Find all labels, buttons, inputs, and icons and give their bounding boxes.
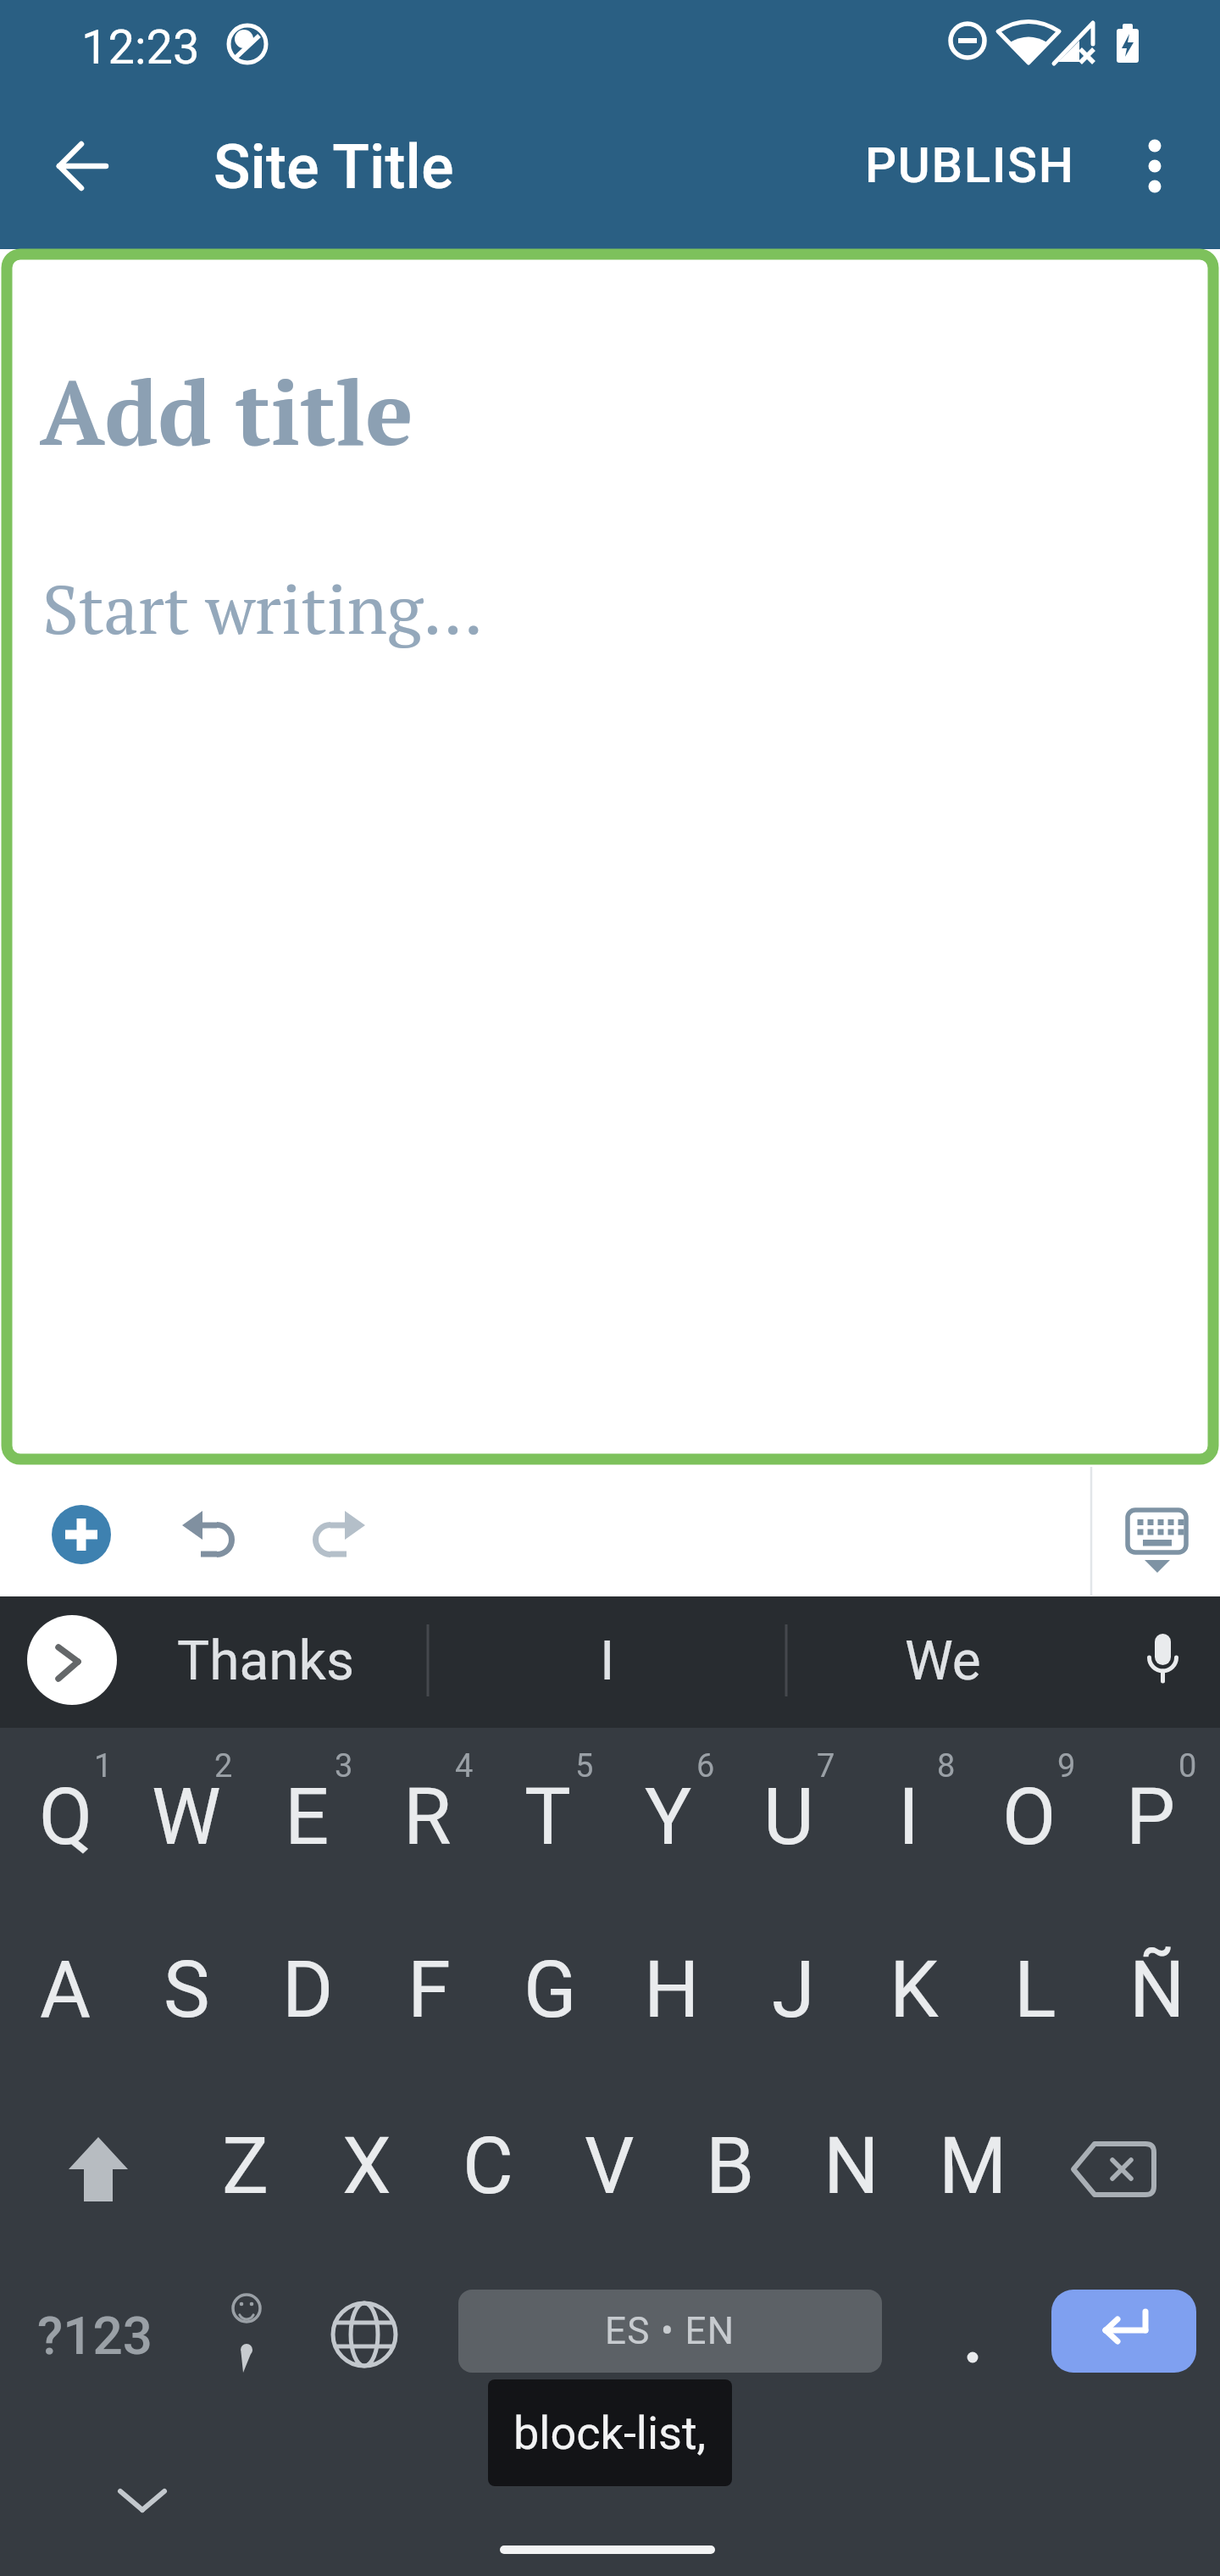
button[interactable]: T [488, 1746, 607, 1890]
staticText: ES • EN [605, 2309, 735, 2353]
button[interactable] [296, 1493, 377, 1574]
button[interactable]: L [976, 1918, 1095, 2062]
button[interactable]: Ñ [1098, 1918, 1217, 2062]
button[interactable]: We [824, 1614, 1062, 1707]
staticText: C [463, 2121, 513, 2212]
staticText: block-list, [513, 2407, 707, 2460]
staticText: I [600, 1629, 615, 1693]
button[interactable]: S [127, 1918, 246, 2062]
staticText: PUBLISH [865, 136, 1075, 194]
staticText: J [772, 1945, 815, 2036]
staticText: Y [645, 1772, 692, 1863]
button[interactable]: C [429, 2095, 547, 2239]
staticText: We [905, 1629, 981, 1693]
staticText: I [898, 1772, 920, 1863]
button[interactable] [169, 1493, 250, 1574]
button[interactable]: K [855, 1918, 973, 2062]
staticText: U [763, 1772, 814, 1863]
button[interactable] [913, 2285, 1032, 2386]
staticText: 8 [937, 1747, 956, 1785]
staticText: W [152, 1772, 221, 1863]
button[interactable]: F [369, 1918, 488, 2062]
staticText: Q [39, 1772, 93, 1863]
staticText: Ñ [1129, 1945, 1185, 2036]
button[interactable]: R [368, 1746, 486, 1890]
staticText: H [644, 1945, 700, 2036]
button[interactable] [1120, 1617, 1205, 1702]
staticText: O [1002, 1772, 1056, 1863]
staticText: Thanks [177, 1629, 355, 1693]
staticText: T [524, 1772, 571, 1863]
staticText: D [282, 1945, 334, 2036]
button[interactable]: G [491, 1918, 609, 2062]
button[interactable]: Y [609, 1746, 728, 1890]
staticText: ?123 [37, 2305, 152, 2367]
staticText: N [823, 2121, 879, 2212]
button[interactable]: ES • EN [458, 2290, 882, 2373]
staticText: G [524, 1945, 577, 2036]
staticText: 3 [335, 1747, 353, 1785]
button[interactable]: U [729, 1746, 848, 1890]
staticText: A [40, 1945, 91, 2036]
staticText: 0 [1178, 1747, 1197, 1785]
button[interactable]: M [913, 2095, 1032, 2239]
button[interactable] [30, 2099, 166, 2235]
button[interactable]: I [489, 1614, 726, 1707]
button[interactable]: J [734, 1918, 852, 2062]
staticText: Site Title [213, 131, 454, 203]
staticText: 5 [575, 1747, 594, 1785]
button[interactable]: V [550, 2095, 668, 2239]
staticText: 7 [817, 1747, 835, 1785]
staticText: S [164, 1945, 210, 2036]
button[interactable]: W [127, 1746, 246, 1890]
staticText: 9 [1057, 1747, 1076, 1785]
button[interactable] [1051, 2290, 1196, 2373]
button[interactable]: ?123 [19, 2285, 171, 2386]
staticText: B [706, 2121, 755, 2212]
button[interactable]: D [248, 1918, 367, 2062]
button[interactable]: B [671, 2095, 790, 2239]
button[interactable] [27, 1615, 117, 1705]
staticText: Z [222, 2121, 269, 2212]
staticText: F [408, 1945, 451, 2036]
button[interactable] [34, 124, 127, 208]
button[interactable]: A [6, 1918, 125, 2062]
button[interactable] [305, 2285, 424, 2386]
staticText: 12:23 [81, 19, 200, 75]
button[interactable]: E [247, 1746, 366, 1890]
button[interactable] [1103, 1490, 1212, 1583]
staticText: V [585, 2121, 635, 2212]
button[interactable]: P [1091, 1746, 1210, 1890]
staticText: M [939, 2121, 1007, 2212]
staticText: Add title [40, 353, 413, 470]
button[interactable] [186, 2285, 305, 2386]
button[interactable]: Q [7, 1746, 125, 1890]
staticText: 2 [214, 1747, 233, 1785]
staticText: P [1126, 1772, 1176, 1863]
staticText: 6 [696, 1747, 715, 1785]
staticText: 1 [94, 1747, 113, 1785]
button[interactable]: X [308, 2095, 426, 2239]
button[interactable]: H [613, 1918, 731, 2062]
button[interactable] [1112, 124, 1197, 208]
button[interactable]: O [970, 1746, 1089, 1890]
staticText: 4 [455, 1747, 474, 1785]
staticText: E [285, 1772, 330, 1863]
button[interactable]: N [792, 2095, 911, 2239]
staticText: Start writing… [42, 563, 483, 653]
button[interactable] [1056, 2099, 1191, 2235]
staticText: K [890, 1945, 939, 2036]
button[interactable]: PUBLISH [851, 119, 1089, 212]
staticText: X [342, 2121, 391, 2212]
button[interactable]: I [850, 1746, 968, 1890]
button[interactable] [41, 1494, 122, 1575]
button[interactable]: Thanks [139, 1614, 393, 1707]
staticText: R [403, 1772, 452, 1863]
button[interactable]: Z [186, 2095, 305, 2239]
staticText: L [1014, 1945, 1056, 2036]
